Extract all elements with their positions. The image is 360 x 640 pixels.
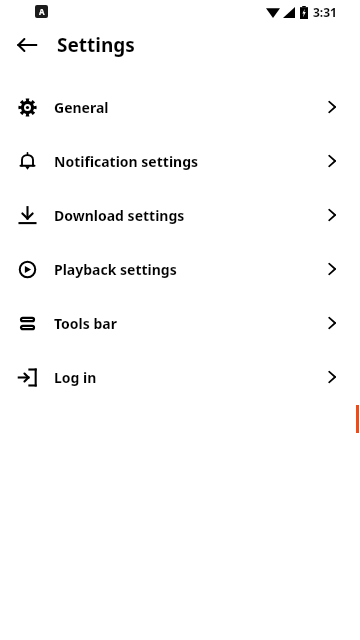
staticText: General: [54, 98, 109, 117]
staticText: 3:31: [313, 4, 337, 20]
button[interactable]: Download settings: [0, 188, 360, 242]
button[interactable]: Playback settings: [0, 242, 360, 296]
staticText: Notification settings: [54, 152, 199, 171]
staticText: Settings: [57, 32, 135, 58]
button[interactable]: Back: [9, 27, 45, 63]
button[interactable]: Tools bar: [0, 296, 360, 350]
staticText: Log in: [54, 368, 97, 387]
button[interactable]: General: [0, 80, 360, 134]
button[interactable]: Log in: [0, 350, 360, 404]
staticText: Playback settings: [54, 260, 177, 279]
staticText: Download settings: [54, 206, 185, 225]
staticText: Tools bar: [54, 314, 117, 333]
staticText: A: [39, 6, 45, 17]
button[interactable]: Notification settings: [0, 134, 360, 188]
